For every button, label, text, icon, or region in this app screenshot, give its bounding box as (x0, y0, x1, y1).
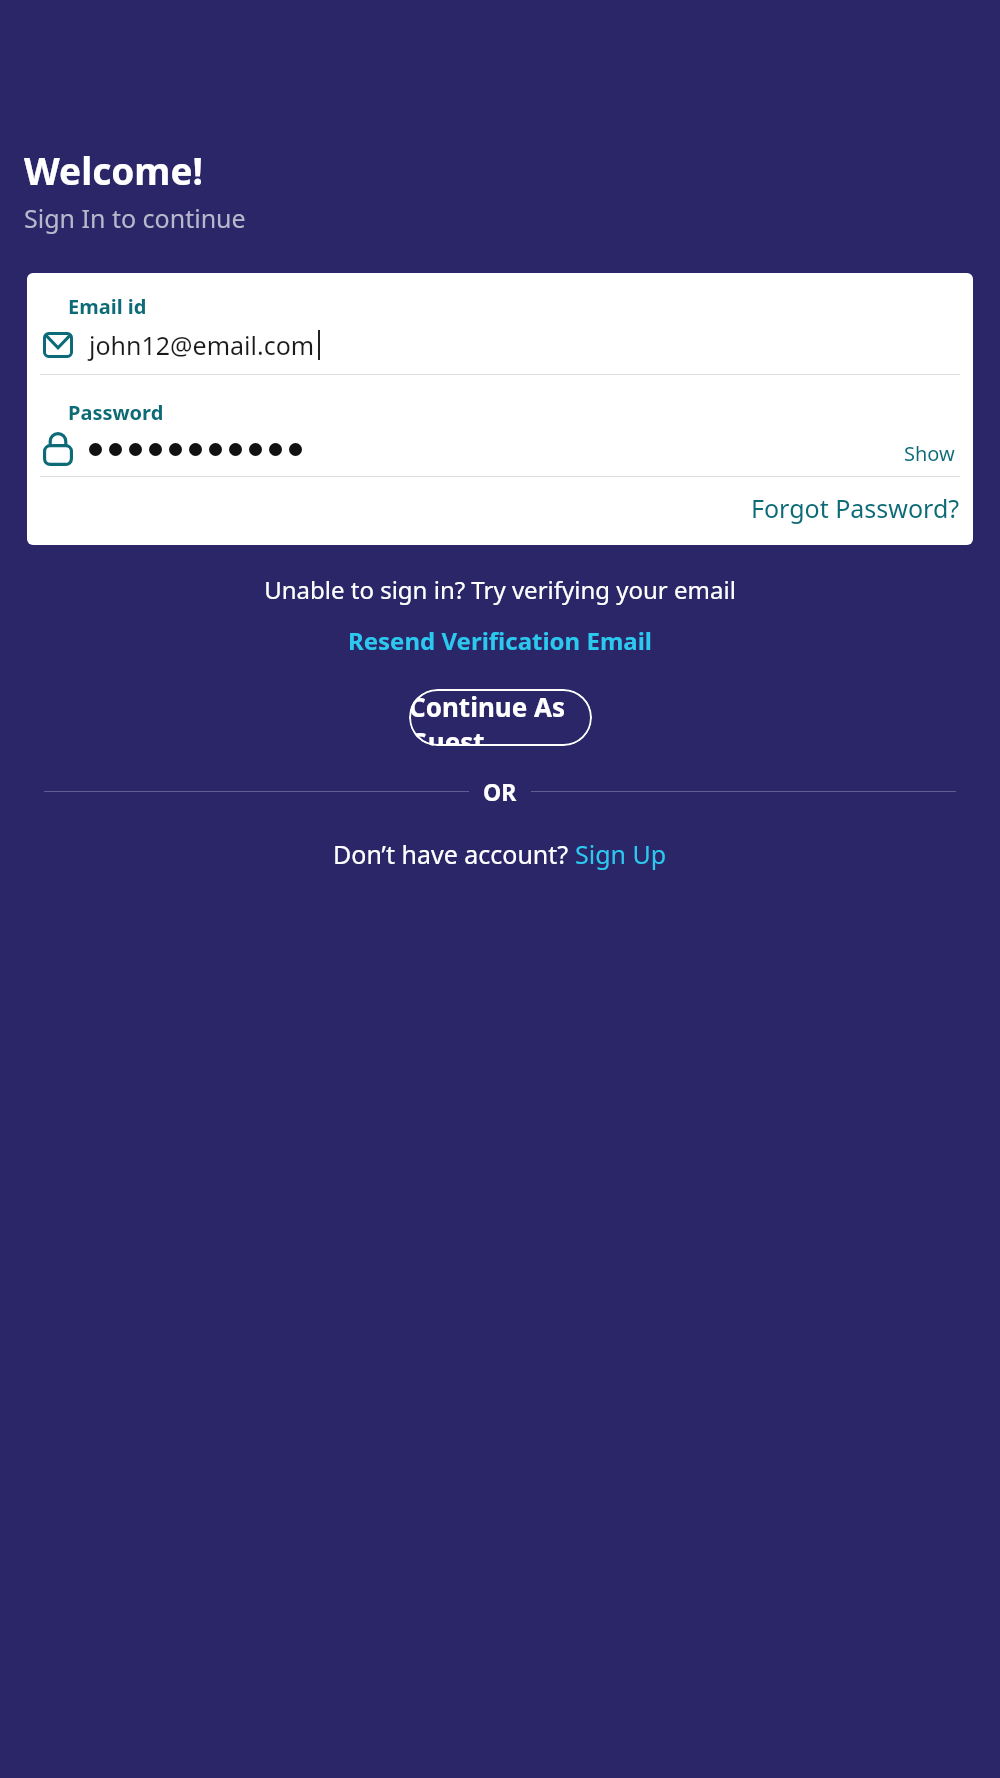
button[interactable]: Continue As Guest (409, 689, 592, 746)
staticText: Email id (68, 293, 147, 320)
staticText: Unable to sign in? Try verifying your em… (0, 573, 1000, 606)
staticText: john12@email.com (89, 328, 315, 362)
staticText: Sign In to continue (24, 201, 246, 235)
staticText: Password (68, 399, 164, 426)
other: Password (43, 432, 73, 466)
staticText: Continue As Guest (409, 689, 592, 746)
staticText: Sign Up (575, 837, 667, 871)
staticText: Don’t have account? (333, 837, 575, 871)
staticText: OR (483, 776, 517, 807)
button[interactable]: Resend Verification Email (344, 622, 656, 659)
other: Email (43, 332, 73, 358)
button[interactable]: Email (43, 328, 957, 362)
button[interactable]: Don’t have account? (333, 837, 667, 871)
button[interactable]: Forgot Password? (751, 491, 973, 525)
button[interactable]: Show (902, 434, 957, 465)
staticText: Welcome! (24, 145, 203, 195)
